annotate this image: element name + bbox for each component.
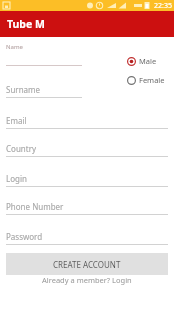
staticText: 22:35 (154, 1, 172, 11)
staticText: Already a member? Login (42, 275, 132, 285)
staticText: Login (6, 173, 27, 184)
staticText: Phone Number (6, 201, 64, 212)
staticText: CREATE ACCOUNT (53, 259, 121, 270)
staticText: Password (6, 231, 43, 242)
button[interactable]: CREATE ACCOUNT (6, 253, 168, 275)
button[interactable] (6, 47, 82, 66)
button[interactable] (6, 226, 168, 245)
staticText: Tube M (7, 17, 45, 31)
staticText: Male (139, 56, 157, 66)
staticText: Email (6, 115, 27, 126)
button[interactable] (6, 110, 168, 129)
staticText: Surname (6, 84, 41, 95)
staticText: Name (6, 43, 23, 51)
button[interactable]: Already a member? Login (0, 274, 174, 286)
button[interactable]: Female (127, 75, 165, 85)
button[interactable] (6, 138, 168, 157)
staticText: Female (139, 75, 165, 85)
button[interactable] (6, 196, 168, 215)
button[interactable]: Tube M (0, 11, 174, 37)
button[interactable] (6, 168, 168, 187)
button[interactable]: Male (127, 56, 157, 66)
button[interactable] (6, 79, 82, 98)
staticText: Country (6, 143, 37, 154)
